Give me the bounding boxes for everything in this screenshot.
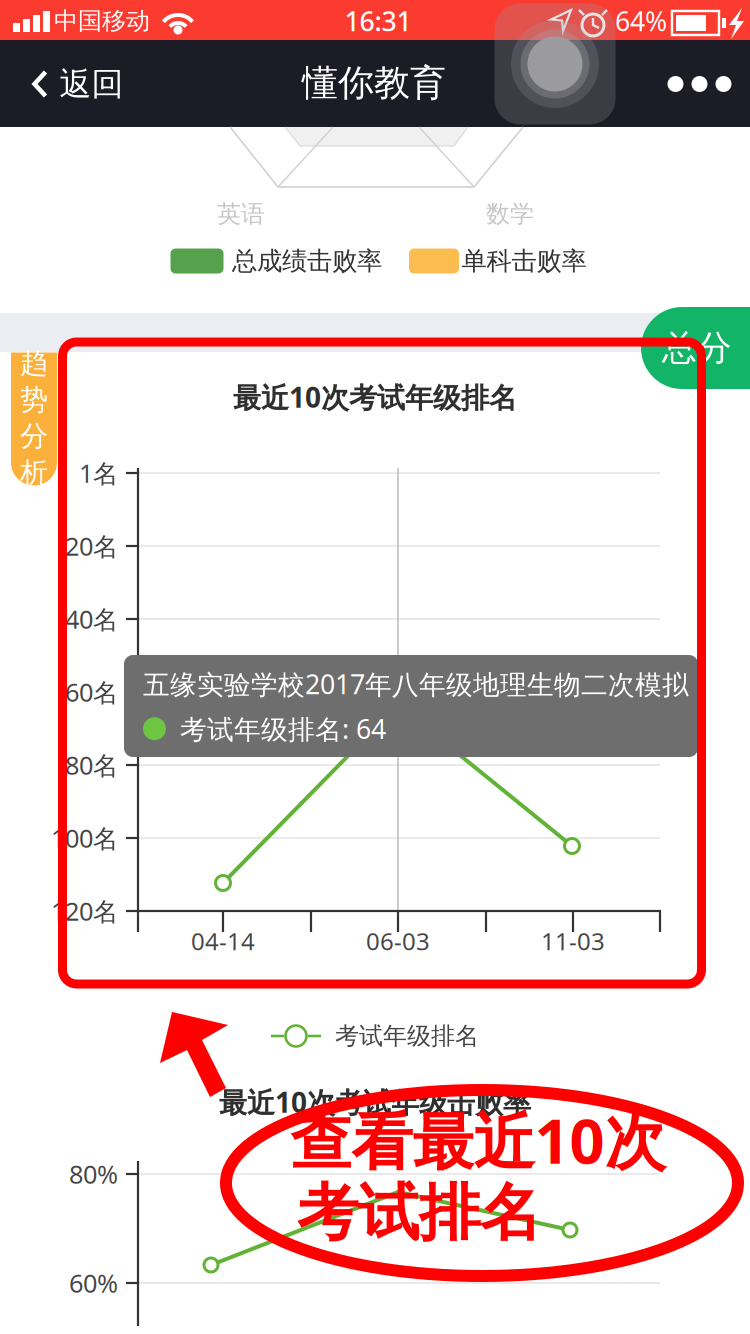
staticText: 04-14	[191, 925, 255, 957]
staticText: 总分	[662, 327, 732, 369]
staticText: 单科击败率	[461, 245, 586, 276]
staticText: 分	[20, 419, 48, 453]
staticText: 40名	[65, 602, 118, 636]
staticText: 最近10次考试年级排名	[233, 378, 517, 416]
staticText: 60%	[69, 1266, 118, 1300]
staticText: 最近10次考试年级击败率	[219, 1083, 531, 1121]
staticText: 64%	[615, 3, 667, 39]
staticText: 80%	[69, 1157, 118, 1191]
staticText: 英语	[217, 199, 265, 229]
button[interactable]: 返回	[8, 45, 139, 122]
staticText: 查看最近10次	[290, 1099, 665, 1181]
staticText: 势	[20, 383, 48, 417]
staticText: 数学	[486, 199, 534, 229]
staticText: 趋	[20, 346, 48, 381]
staticText: 考试年级排名: 64	[180, 711, 386, 746]
button[interactable]: 趋	[11, 352, 57, 485]
staticText: 120名	[51, 894, 118, 928]
staticText: 考试年级排名	[335, 1021, 479, 1051]
button[interactable]: 总分	[641, 307, 750, 389]
staticText: 五缘实验学校2017年八年级地理生物二次模拟	[143, 666, 689, 702]
button[interactable]: More options	[643, 45, 750, 123]
staticText: 返回	[59, 64, 123, 104]
staticText: 析	[20, 455, 48, 490]
staticText: 06-03	[366, 925, 430, 957]
staticText: 60名	[65, 675, 118, 709]
staticText: 11-03	[541, 925, 605, 957]
staticText: 1名	[79, 456, 118, 490]
staticText: 16:31	[344, 3, 411, 39]
staticText: 考试排名	[297, 1175, 541, 1251]
staticText: 80名	[65, 748, 118, 782]
staticText: 20名	[65, 529, 118, 563]
staticText: 懂你教育	[302, 61, 446, 105]
staticText: 100名	[51, 821, 118, 855]
staticText: 中国移动	[54, 6, 150, 36]
staticText: 总成绩击败率	[232, 245, 382, 276]
